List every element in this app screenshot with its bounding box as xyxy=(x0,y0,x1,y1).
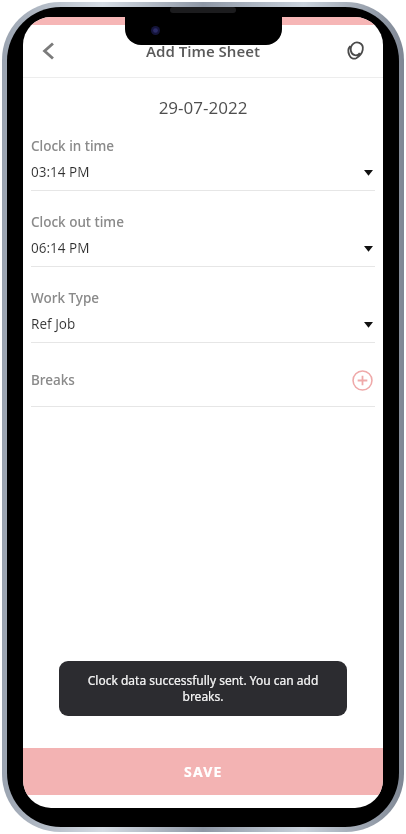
button[interactable]: Clock in time xyxy=(31,137,375,191)
staticText: Breaks xyxy=(31,371,349,389)
staticText: SAVE xyxy=(184,762,223,781)
staticText: 03:14 PM xyxy=(31,163,364,181)
staticText: Clock out time xyxy=(31,213,124,231)
button[interactable]: Back xyxy=(27,29,71,73)
staticText: Work Type xyxy=(31,289,100,307)
staticText: Ref Job xyxy=(31,315,364,333)
staticText: Clock in time xyxy=(31,137,115,155)
button[interactable]: Add break xyxy=(349,367,375,393)
staticText: 06:14 PM xyxy=(31,239,364,257)
staticText: Add Time Sheet xyxy=(146,41,261,61)
staticText: 29-07-2022 xyxy=(31,96,375,119)
staticText: Clock data successfully sent. You can ad… xyxy=(79,672,327,705)
button[interactable]: Clock out time xyxy=(31,213,375,267)
button[interactable]: Attach file xyxy=(333,29,377,73)
button[interactable]: Work Type xyxy=(31,289,375,343)
button[interactable]: SAVE xyxy=(23,748,383,795)
